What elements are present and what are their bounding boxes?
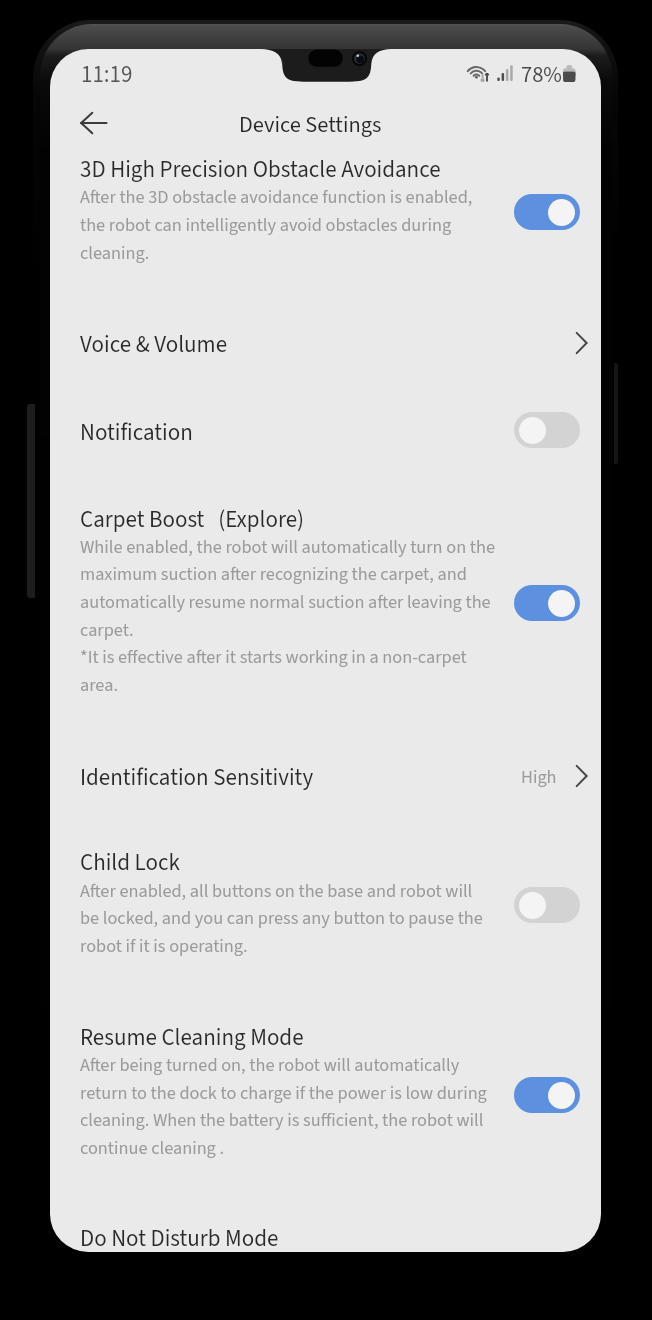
- staticText: 11:19: [81, 58, 133, 91]
- button[interactable]: [80, 317, 586, 369]
- button[interactable]: Carpet Boost toggle: [514, 585, 580, 621]
- staticText: Do Not Disturb Mode: [80, 1222, 279, 1252]
- staticText: return to the dock to charge if the powe…: [80, 1080, 487, 1106]
- staticText: Resume Cleaning Mode: [80, 1021, 304, 1054]
- staticText: cleaning. When the battery is sufficient…: [80, 1107, 484, 1133]
- staticText: Carpet Boost (Explore): [80, 503, 305, 536]
- staticText: maximum suction after recognizing the ca…: [80, 561, 467, 587]
- staticText: automatically resume normal suction afte…: [80, 589, 491, 615]
- staticText: While enabled, the robot will automatica…: [80, 534, 495, 560]
- staticText: High: [521, 764, 557, 790]
- staticText: continue cleaning .: [80, 1135, 225, 1161]
- staticText: 78%: [521, 59, 562, 91]
- button[interactable]: Child Lock toggle: [514, 887, 580, 923]
- button[interactable]: Back: [69, 98, 118, 147]
- staticText: area.: [80, 672, 118, 698]
- staticText: 3D High Precision Obstacle Avoidance: [80, 153, 441, 186]
- staticText: *It is effective after it starts working…: [80, 644, 467, 670]
- staticText: the robot can intelligently avoid obstac…: [80, 212, 452, 238]
- button[interactable]: [80, 750, 586, 802]
- staticText: cleaning.: [80, 240, 150, 266]
- staticText: Notification: [80, 416, 193, 449]
- staticText: Child Lock: [80, 846, 180, 879]
- button[interactable]: Notification toggle: [514, 412, 580, 448]
- staticText: Identification Sensitivity: [80, 761, 314, 794]
- staticText: Device Settings: [239, 109, 382, 141]
- staticText: After the 3D obstacle avoidance function…: [80, 184, 473, 210]
- staticText: After enabled, all buttons on the base a…: [80, 878, 473, 904]
- button[interactable]: [80, 1211, 586, 1251]
- staticText: carpet.: [80, 617, 134, 643]
- staticText: robot if it is operating.: [80, 933, 248, 959]
- staticText: Voice & Volume: [80, 328, 228, 361]
- button[interactable]: 3D High Precision Obstacle Avoidance tog…: [514, 194, 580, 230]
- staticText: After being turned on, the robot will au…: [80, 1052, 460, 1078]
- button[interactable]: Resume Cleaning Mode toggle: [514, 1077, 580, 1113]
- staticText: be locked, and you can press any button …: [80, 905, 483, 931]
